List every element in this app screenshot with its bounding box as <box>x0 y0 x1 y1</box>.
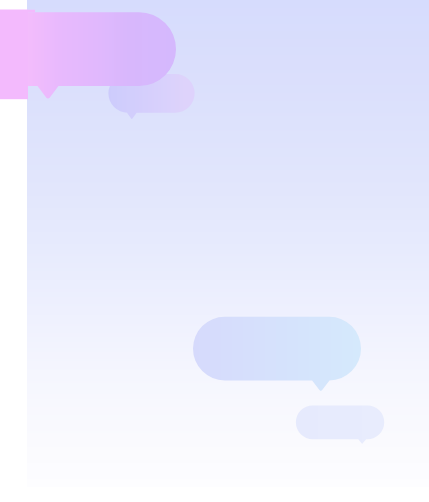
button[interactable]: Message bubble, follow up <box>108 74 194 119</box>
button[interactable]: Message bubble, incoming message <box>0 12 176 98</box>
button[interactable]: Message bubble, reply <box>193 317 361 391</box>
button[interactable]: Message bubble, short reply <box>296 405 384 443</box>
